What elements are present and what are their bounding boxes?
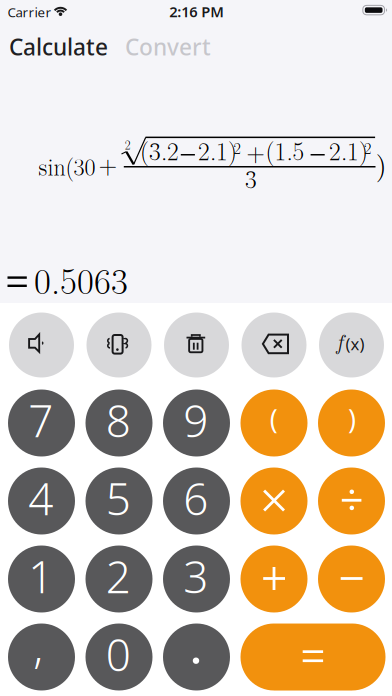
button[interactable] <box>86 312 151 377</box>
staticText: sin(30 <box>38 148 95 182</box>
staticText: + <box>99 145 117 181</box>
button[interactable]: Calculate <box>9 31 108 62</box>
staticText: 9 <box>183 390 208 450</box>
button[interactable]: 1 <box>8 545 75 612</box>
staticText: 1 <box>28 546 53 606</box>
button[interactable] <box>9 312 74 377</box>
staticText: 2.1) <box>198 132 237 167</box>
staticText: (x) <box>346 332 365 355</box>
button[interactable]: ( <box>240 389 307 456</box>
staticText: f <box>336 326 343 356</box>
staticText: (3.2 <box>140 132 179 167</box>
button[interactable] <box>318 545 385 612</box>
staticText: 2 <box>125 135 131 153</box>
staticText: 2:16 PM <box>169 2 224 22</box>
staticText: (1.5 <box>265 132 304 167</box>
button[interactable]: 6 <box>163 467 230 534</box>
button[interactable]: 8 <box>85 389 152 456</box>
button[interactable]: Convert <box>125 31 211 62</box>
button[interactable]: 4 <box>8 467 75 534</box>
staticText: 4 <box>28 468 53 528</box>
staticText: 3 <box>183 546 208 606</box>
button[interactable] <box>318 467 385 534</box>
staticText: Convert <box>125 31 211 62</box>
button[interactable]: 3 <box>163 545 230 612</box>
staticText: ) <box>376 144 387 183</box>
button[interactable] <box>240 545 307 612</box>
staticText: , <box>33 616 43 676</box>
button[interactable] <box>240 623 385 690</box>
staticText: 5 <box>106 468 131 528</box>
button[interactable] <box>240 467 307 534</box>
button[interactable]: 9 <box>163 389 230 456</box>
staticText: 2 <box>364 136 371 158</box>
staticText: 2.1) <box>329 132 368 167</box>
staticText: 8 <box>106 390 131 450</box>
staticText: 0 <box>106 624 131 684</box>
button[interactable] <box>163 623 230 690</box>
button[interactable]: f <box>319 312 384 377</box>
staticText: ) <box>348 401 356 437</box>
button[interactable] <box>241 312 306 377</box>
staticText: Calculate <box>9 31 108 62</box>
staticText: Carrier <box>7 3 51 21</box>
staticText: 7 <box>28 390 53 450</box>
staticText: 3 <box>245 160 257 195</box>
staticText: + <box>246 133 264 168</box>
button[interactable]: 5 <box>85 467 152 534</box>
button[interactable]: , <box>8 623 75 690</box>
button[interactable]: 2 <box>85 545 152 612</box>
button[interactable]: 0 <box>85 623 152 690</box>
button[interactable]: ) <box>318 389 385 456</box>
staticText: 0.5063 <box>34 253 128 304</box>
button[interactable] <box>164 312 229 377</box>
button[interactable]: 7 <box>8 389 75 456</box>
staticText: 6 <box>183 468 208 528</box>
staticText: ( <box>270 401 278 437</box>
staticText: 2 <box>106 546 131 606</box>
staticText: 2 <box>233 136 240 158</box>
